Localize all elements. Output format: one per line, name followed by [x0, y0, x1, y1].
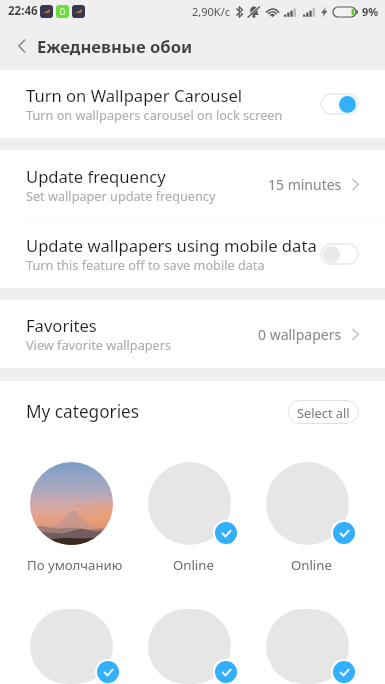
staticText: Turn on wallpapers carousel on lock scre… [26, 106, 283, 123]
staticText: My categories [26, 400, 140, 423]
button[interactable] [130, 609, 248, 684]
button[interactable]: Turn on Wallpaper Carousel [0, 70, 385, 138]
button[interactable]: Online [130, 462, 248, 574]
staticText: Update wallpapers using mobile data [26, 234, 317, 257]
button[interactable] [12, 609, 130, 684]
staticText: 15 minutes [268, 175, 342, 194]
button[interactable]: Favorites [0, 300, 385, 368]
button[interactable]: По умолчанию [12, 462, 130, 574]
button[interactable]: Turn on [320, 243, 359, 265]
staticText: Update frequency [26, 165, 166, 188]
button[interactable]: Online [248, 462, 366, 574]
staticText: Online [291, 556, 332, 574]
staticText: Turn on Wallpaper Carousel [26, 84, 243, 107]
staticText: Select all [297, 404, 350, 421]
staticText: 0 wallpapers [258, 325, 342, 344]
button[interactable]: Update wallpapers using mobile data [0, 219, 385, 288]
staticText: 9% [362, 4, 379, 19]
staticText: Set wallpaper update frequency [26, 187, 216, 204]
staticText: Turn this feature off to save mobile dat… [26, 256, 265, 273]
button[interactable] [248, 609, 366, 684]
staticText: 2,90K/c [192, 4, 231, 19]
staticText: По умолчанию [27, 556, 123, 574]
button[interactable]: Turn off [320, 93, 359, 115]
button[interactable]: Back [0, 24, 44, 68]
staticText: View favorite wallpapers [26, 336, 172, 353]
button[interactable]: Select all [288, 400, 359, 424]
staticText: Ежедневные обои [37, 35, 193, 58]
staticText: Favorites [26, 314, 97, 337]
button[interactable]: Update frequency [0, 150, 385, 219]
staticText: 22:46 [8, 3, 38, 19]
staticText: Online [173, 556, 214, 574]
